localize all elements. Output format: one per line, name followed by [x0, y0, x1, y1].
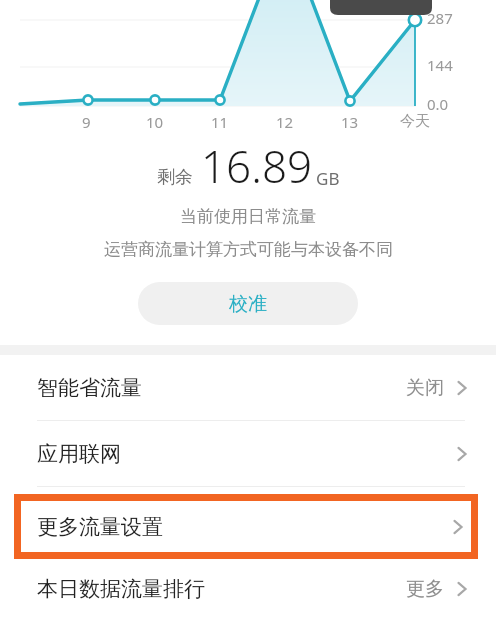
other: Open — [454, 581, 470, 597]
staticText: 剩余 — [157, 166, 193, 189]
staticText: 更多流量设置 — [37, 514, 163, 540]
staticText: 更多 — [406, 577, 444, 601]
other: Open — [454, 446, 470, 462]
staticText: 运营商流量计算方式可能与本设备不同 — [104, 239, 393, 260]
staticText: 287 — [427, 8, 453, 28]
button[interactable]: 应用联网 — [0, 421, 496, 486]
staticText: 今天 — [400, 112, 430, 131]
staticText: 0.0 — [427, 94, 449, 114]
button[interactable]: 更多流量设置 — [14, 494, 478, 559]
other: Open — [454, 380, 470, 396]
button[interactable]: 本日数据流量排行 — [0, 559, 496, 619]
staticText: 本日数据流量排行 — [37, 576, 205, 602]
staticText: 智能省流量 — [37, 375, 142, 401]
staticText: 应用联网 — [37, 441, 121, 467]
staticText: 校准 — [229, 292, 267, 316]
staticText: 11 — [211, 112, 229, 132]
staticText: 9 — [82, 112, 91, 132]
button[interactable]: 智能省流量 — [0, 355, 496, 420]
staticText: 12 — [276, 112, 294, 132]
staticText: 144 — [427, 55, 453, 75]
staticText: GB — [316, 167, 340, 190]
staticText: 关闭 — [406, 376, 444, 400]
staticText: 16.89 — [201, 136, 313, 196]
staticText: 10 — [146, 112, 164, 132]
other: Open — [450, 519, 466, 535]
staticText: 当前使用日常流量 — [180, 206, 316, 227]
staticText: 13 — [341, 112, 359, 132]
button[interactable]: 校准 — [138, 282, 358, 325]
